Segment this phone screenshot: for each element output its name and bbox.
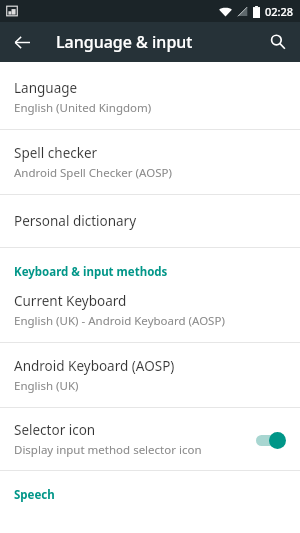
staticText: Android Spell Checker (AOSP): [14, 165, 172, 181]
staticText: Language: [14, 79, 78, 97]
staticText: Speech: [14, 487, 55, 503]
staticText: Current Keyboard: [14, 292, 127, 310]
staticText: Personal dictionary: [14, 212, 137, 230]
staticText: Display input method selector icon: [14, 442, 202, 458]
button[interactable]: Search: [258, 22, 298, 62]
button[interactable]: Toggle selector icon: [254, 430, 286, 450]
staticText: Selector icon: [14, 421, 96, 439]
button[interactable]: Personal dictionary: [0, 195, 300, 247]
staticText: 02:28: [265, 4, 294, 19]
button[interactable]: Language: [0, 62, 300, 129]
button[interactable]: Selector icon: [0, 408, 300, 470]
button[interactable]: Spell checker: [0, 130, 300, 194]
staticText: Android Keyboard (AOSP): [14, 357, 175, 375]
button[interactable]: Current Keyboard: [0, 288, 300, 342]
staticText: English (UK) - Android Keyboard (AOSP): [14, 313, 225, 329]
staticText: Language & input: [56, 31, 193, 53]
staticText: English (United Kingdom): [14, 100, 152, 116]
button[interactable]: Android Keyboard (AOSP): [0, 343, 300, 407]
button[interactable]: Back: [2, 22, 42, 62]
staticText: English (UK): [14, 378, 79, 394]
staticText: Keyboard & input methods: [14, 264, 168, 280]
staticText: Spell checker: [14, 144, 98, 162]
